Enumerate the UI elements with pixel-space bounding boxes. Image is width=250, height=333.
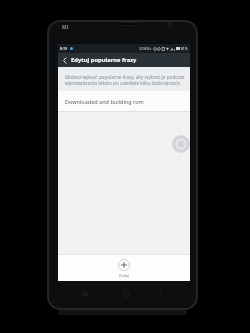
staticText: 320KB/s [139,47,152,51]
staticText: wprowadzania tekstu po zaledwie kilku do… [65,80,181,86]
staticText: 81% [181,47,188,51]
staticText: Edytuj popularne frazy [71,56,137,64]
staticText: MI [62,24,69,31]
button[interactable] [172,135,190,153]
button[interactable] [121,289,131,298]
staticText: Dodaj [119,273,129,278]
button[interactable] [80,289,90,298]
staticText: 8:19 [60,46,68,51]
button[interactable]: Dodaj [58,255,190,281]
button[interactable]: Downloaded and building rom [58,91,190,111]
button[interactable]: Edytuj popularne frazy [58,53,190,67]
staticText: Downloaded and building rom [65,98,144,105]
staticText: Możesz wpisać popularne frazy, aby wybra… [65,74,185,80]
